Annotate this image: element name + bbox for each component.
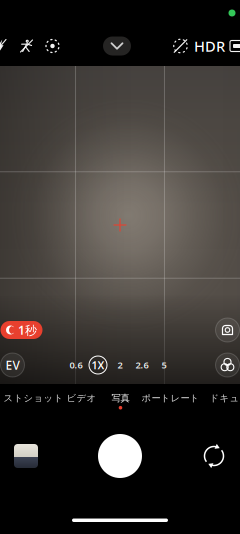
staticText: ストショット	[3, 392, 63, 404]
button[interactable]: 写真	[96, 388, 144, 414]
button[interactable]: More camera controls	[103, 36, 131, 55]
button[interactable]: 0.6	[65, 354, 87, 376]
button[interactable]: Photographic style	[213, 316, 240, 344]
staticText: ポートレート	[141, 392, 199, 404]
button[interactable]: ポートレート	[144, 388, 196, 414]
button[interactable]: Live Photo	[39, 31, 65, 61]
button[interactable]: Photo format	[226, 31, 240, 61]
staticText: EV	[5, 357, 19, 373]
button[interactable]: Action mode off	[13, 31, 39, 61]
staticText: HDR	[194, 36, 225, 56]
staticText: 0.6	[69, 359, 82, 371]
staticText: 2	[117, 359, 122, 371]
button[interactable]: Photographic styles	[213, 351, 240, 379]
button[interactable]: Take photo	[52, 434, 188, 478]
staticText: 写真	[111, 392, 129, 404]
staticText: 5	[161, 359, 166, 371]
button[interactable]: Photo library	[0, 434, 52, 478]
button[interactable]: Live Photo off	[168, 31, 192, 61]
button[interactable]: 2	[109, 354, 131, 376]
button[interactable]: Flash off	[0, 31, 13, 61]
button[interactable]: ストショット	[0, 388, 66, 414]
staticText: 1秒	[18, 322, 37, 338]
button[interactable]: HDR	[194, 31, 224, 61]
staticText: ビデオ	[66, 392, 96, 404]
staticText: 1X	[91, 358, 104, 372]
button[interactable]: 5	[153, 354, 175, 376]
button[interactable]: Switch camera	[188, 434, 240, 478]
staticText: ドキュ	[209, 392, 239, 404]
button[interactable]: ドキュ	[196, 388, 240, 414]
button[interactable]: 1X	[87, 354, 109, 376]
button[interactable]: Exposure value	[0, 351, 26, 379]
button[interactable]: ビデオ	[66, 388, 96, 414]
staticText: 2.6	[135, 359, 148, 371]
button[interactable]: 2.6	[131, 354, 153, 376]
button[interactable]: Night mode 1 second	[0, 321, 42, 339]
